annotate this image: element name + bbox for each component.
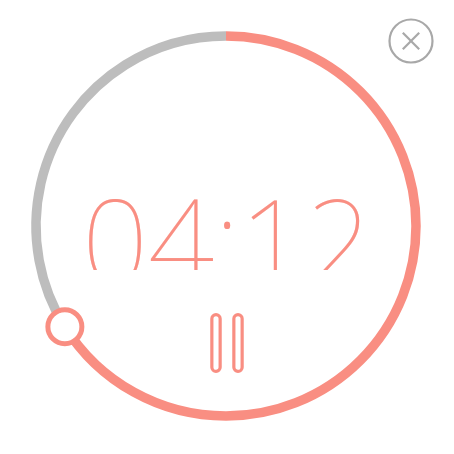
button[interactable]: 04:12 bbox=[77, 160, 377, 270]
button[interactable]: Close bbox=[387, 17, 435, 65]
button[interactable]: Pause bbox=[196, 300, 258, 388]
button[interactable] bbox=[0, 0, 454, 454]
